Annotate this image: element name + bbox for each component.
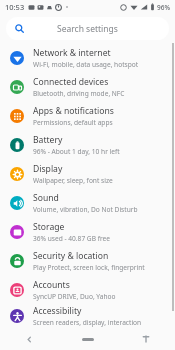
staticText: Bluetooth, driving mode, NFC xyxy=(33,89,125,98)
staticText: Network & internet xyxy=(33,47,111,59)
staticText: Wi-Fi, mobile, data usage, hotspot xyxy=(33,60,139,69)
button[interactable]: Connected devices xyxy=(0,72,175,101)
staticText: Volume, vibration, Do Not Disturb xyxy=(33,205,138,214)
staticText: Security & location xyxy=(33,250,109,262)
button[interactable]: Back xyxy=(0,328,59,350)
button[interactable]: Home xyxy=(59,328,117,350)
staticText: Sound xyxy=(33,192,59,204)
staticText: 96% - About 1 day, 10 hr left xyxy=(33,147,120,156)
staticText: Search settings xyxy=(57,23,118,35)
staticText: Storage xyxy=(33,221,65,233)
staticText: Connected devices xyxy=(33,76,109,88)
staticText: Accessibility xyxy=(33,305,82,317)
staticText: Permissions, default apps xyxy=(33,118,113,127)
button[interactable]: Apps & notifications xyxy=(0,101,175,130)
button[interactable]: Accounts xyxy=(0,275,175,304)
staticText: Accounts xyxy=(33,279,70,291)
staticText: Screen readers, display, interaction con… xyxy=(33,318,167,327)
staticText: Wallpaper, sleep, font size xyxy=(33,176,113,185)
staticText: Play Protect, screen lock, fingerprint xyxy=(33,263,145,272)
button[interactable]: Display xyxy=(0,159,175,188)
staticText: SyncUP DRIVE, Duo, Yahoo xyxy=(33,292,116,301)
button[interactable]: Sound xyxy=(0,188,175,217)
staticText: Display xyxy=(33,163,63,175)
staticText: Apps & notifications xyxy=(33,105,114,117)
button[interactable]: Accessibility xyxy=(0,304,175,328)
staticText: 36% used - 40.87 GB free xyxy=(33,234,110,243)
staticText: Battery xyxy=(33,134,63,146)
button[interactable]: Search settings xyxy=(6,17,169,40)
staticText: 96% xyxy=(157,3,170,12)
button[interactable]: Network & internet xyxy=(0,43,175,72)
button[interactable]: Battery xyxy=(0,130,175,159)
button[interactable]: Storage xyxy=(0,217,175,246)
staticText: 10:53 xyxy=(5,2,25,12)
button[interactable]: Security & location xyxy=(0,246,175,275)
button[interactable]: Assistant xyxy=(117,328,175,350)
